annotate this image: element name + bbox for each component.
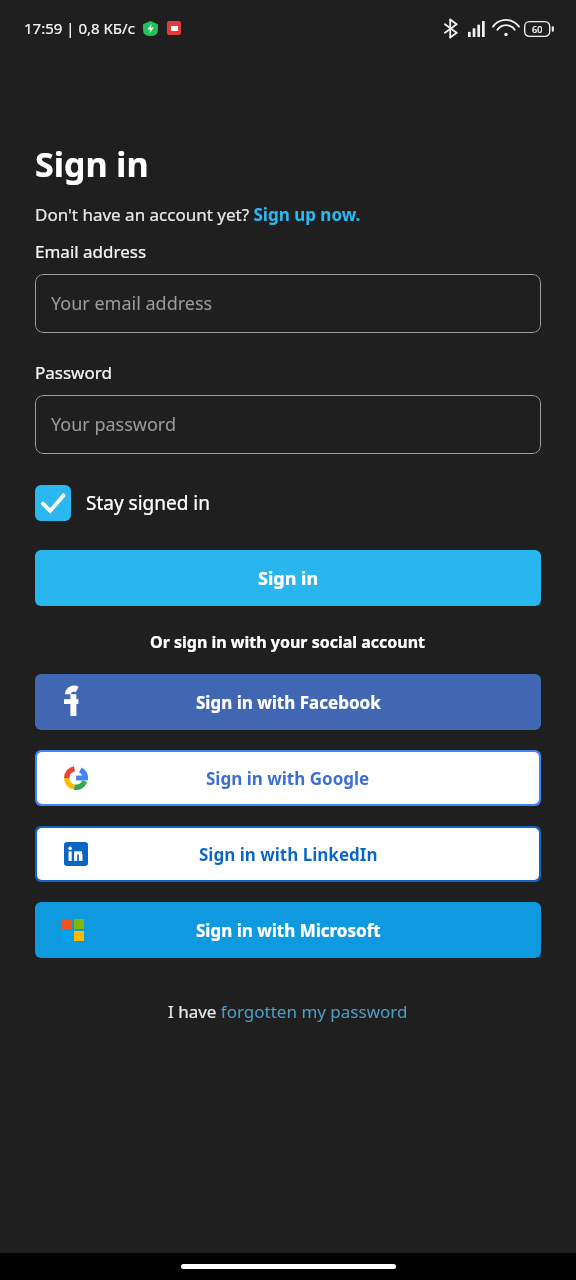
staticText: I have forgotten my password <box>168 1000 408 1023</box>
staticText: 17:59 | 0,8 КБ/с <box>24 18 136 38</box>
button[interactable]: Your email address <box>35 274 541 333</box>
staticText: Or sign in with your social account <box>150 631 426 653</box>
button[interactable]: Sign in with Microsoft <box>35 902 541 958</box>
button[interactable]: Don't have an account yet? Sign up now. <box>35 203 361 226</box>
staticText: Sign in with LinkedIn <box>199 843 378 866</box>
staticText: Don't have an account yet? Sign up now. <box>35 203 361 226</box>
staticText: Sign in with Facebook <box>196 691 381 714</box>
button[interactable]: Sign in <box>35 550 541 606</box>
staticText: Sign in with Microsoft <box>196 919 381 942</box>
staticText: Your password <box>51 412 177 437</box>
button[interactable]: Sign in with LinkedIn <box>35 826 541 882</box>
button[interactable]: Your password <box>35 395 541 454</box>
button[interactable]: Stay signed in <box>35 485 210 521</box>
staticText: 60 <box>532 23 543 35</box>
button[interactable]: I have forgotten my password <box>0 1000 576 1023</box>
staticText: Stay signed in <box>86 490 210 516</box>
button[interactable]: Sign in with Google <box>35 750 541 806</box>
staticText: Sign in with Google <box>206 767 370 790</box>
staticText: Sign in <box>35 141 149 187</box>
staticText: Sign in <box>258 566 319 591</box>
staticText: Your email address <box>51 291 213 316</box>
staticText: Password <box>35 361 112 384</box>
staticText: Email address <box>35 240 147 263</box>
button[interactable]: Sign in with Facebook <box>35 674 541 730</box>
